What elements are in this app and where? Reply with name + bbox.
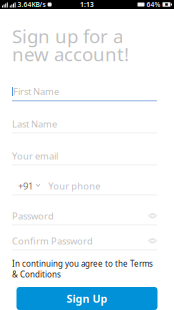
staticText: 1:13 <box>80 0 94 9</box>
button[interactable]: First Name <box>12 86 157 101</box>
button[interactable]: In continuing you agree to the Terms & C… <box>12 258 158 274</box>
button[interactable]: Confirm Password <box>12 235 157 250</box>
staticText: Password <box>12 210 54 222</box>
staticText: In continuing you agree to the Terms & C… <box>12 258 153 280</box>
staticText: 64% <box>146 0 160 9</box>
staticText: Last Name <box>12 118 57 130</box>
staticText: new account! <box>12 42 129 66</box>
staticText: Your email <box>12 150 58 162</box>
staticText: Sign Up <box>66 291 107 306</box>
staticText: Your phone <box>48 180 100 192</box>
button[interactable]: Last Name <box>12 118 157 133</box>
button[interactable]: Password <box>12 210 157 225</box>
staticText: 3.64KB/s <box>18 0 46 9</box>
button[interactable]: Sign Up <box>16 287 157 310</box>
staticText: Sign up for a <box>12 24 123 48</box>
button[interactable]: Your email <box>12 150 157 165</box>
button[interactable]: +91 <box>12 180 157 195</box>
staticText: Confirm Password <box>12 235 93 247</box>
staticText: +91 <box>18 180 33 192</box>
staticText: First Name <box>13 85 59 98</box>
